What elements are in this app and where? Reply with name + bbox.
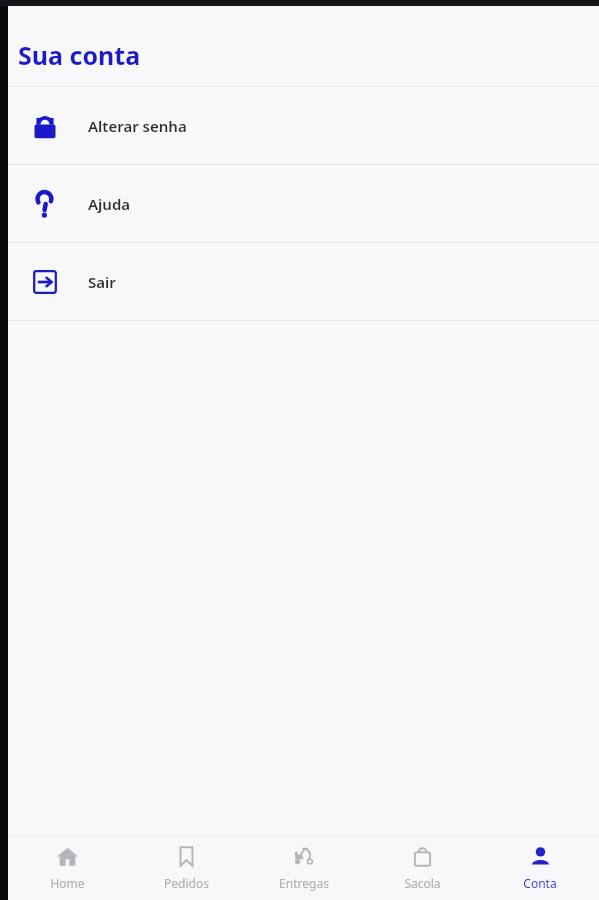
button[interactable]: Entregas xyxy=(245,837,363,900)
staticText: Home xyxy=(50,875,85,891)
staticText: Conta xyxy=(523,875,557,891)
staticText: Sair xyxy=(88,272,116,292)
staticText: Entregas xyxy=(279,875,329,891)
button[interactable]: Sacola xyxy=(363,837,481,900)
staticText: Sua conta xyxy=(18,38,141,72)
button[interactable]: Conta xyxy=(481,837,599,900)
button[interactable]: Sair xyxy=(8,243,599,320)
button[interactable]: Ajuda xyxy=(8,165,599,242)
staticText: Ajuda xyxy=(88,194,131,214)
staticText: Pedidos xyxy=(164,875,209,891)
button[interactable]: Home xyxy=(8,837,127,900)
staticText: Sacola xyxy=(404,875,441,891)
button[interactable]: Alterar senha xyxy=(8,87,599,164)
staticText: Alterar senha xyxy=(88,116,187,136)
button[interactable]: Pedidos xyxy=(127,837,245,900)
